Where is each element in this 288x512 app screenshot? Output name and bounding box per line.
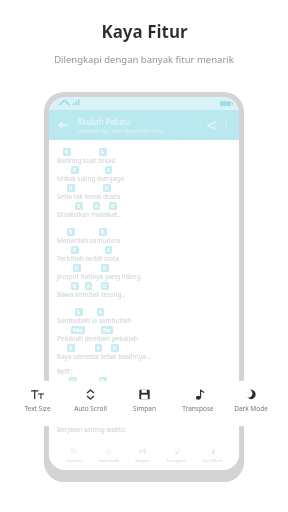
staticText: Terbitlah terbit cinta: [57, 254, 119, 263]
staticText: Dilengkapi dengan banyak fitur menarik: [54, 53, 234, 66]
staticText: Dark Mode: [234, 404, 268, 413]
staticText: Peluklah dendam peluklah: [57, 334, 139, 343]
button[interactable]: Auto Scroll: [65, 386, 115, 415]
staticText: F#m: [73, 327, 83, 333]
staticText: Reff :: [57, 367, 73, 376]
button[interactable]: Simpan: [119, 386, 169, 415]
staticText: Transpose: [166, 458, 186, 463]
staticText: Sambutlah ia sambutlah: [57, 316, 132, 325]
button[interactable]: Share: [203, 117, 219, 133]
staticText: D: [105, 185, 109, 191]
staticText: G: [101, 149, 105, 155]
staticText: G: [69, 345, 73, 351]
staticText: D: [101, 378, 105, 384]
staticText: D: [73, 247, 77, 253]
staticText: D: [101, 229, 105, 235]
staticText: D: [103, 283, 107, 289]
staticText: Auto Scroll: [74, 404, 107, 413]
staticText: Dark Mode: [202, 458, 223, 463]
staticText: Jemput hatinya yang hilang: [57, 272, 141, 281]
staticText: D: [65, 149, 69, 155]
staticText: D: [111, 203, 115, 209]
staticText: D: [77, 203, 81, 209]
staticText: A: [95, 203, 98, 209]
staticText: D: [69, 229, 73, 235]
button[interactable]: Dark Mode: [202, 446, 223, 465]
staticText: Simpan: [133, 404, 156, 413]
button[interactable]: Text Size: [12, 386, 62, 415]
staticText: A: [99, 309, 102, 315]
staticText: Beriring kuat tekad: [57, 156, 116, 165]
staticText: Berjalan seiring waktu: [57, 425, 126, 434]
staticText: D: [69, 185, 73, 191]
staticText: A: [97, 345, 100, 351]
staticText: A: [107, 167, 110, 173]
staticText: Simpan: [135, 458, 150, 463]
staticText: Auto Scroll: [98, 458, 119, 463]
staticText: G: [77, 309, 81, 315]
staticText: Kebaikan Ryo Feat. Maward JKT (HD): [77, 128, 164, 135]
staticText: D: [73, 167, 77, 173]
staticText: Disaksikan malaikat..: [57, 210, 121, 219]
staticText: Menarilah samudera: [57, 236, 121, 245]
staticText: D: [73, 283, 77, 289]
staticText: D: [75, 265, 79, 271]
button[interactable]: Text Size: [65, 446, 82, 465]
staticText: Text Size: [65, 458, 82, 463]
button[interactable]: Dark Mode: [226, 386, 276, 415]
staticText: Untuk saling menjaga: [57, 174, 124, 183]
staticText: Setia tak kenal dusta: [57, 192, 121, 201]
staticText: Masihkah rona has memori: [59, 385, 143, 394]
button[interactable]: Simpan: [135, 446, 150, 465]
staticText: A: [87, 283, 90, 289]
staticText: Bawa kembali terang..: [57, 290, 125, 299]
button[interactable]: More options: [219, 118, 233, 132]
staticText: Transpose: [182, 404, 214, 413]
button[interactable]: Transpose: [166, 446, 186, 465]
staticText: Bm: [103, 327, 111, 333]
button[interactable]: Back: [55, 117, 71, 133]
staticText: Kaya Fitur: [101, 20, 188, 43]
staticText: A: [107, 247, 110, 253]
staticText: Raya semesta tebar kasihnya ..: [57, 352, 151, 361]
staticText: Akulah Peluru: [77, 116, 131, 127]
staticText: D: [103, 265, 107, 271]
staticText: D: [71, 378, 75, 384]
staticText: D: [113, 345, 117, 351]
button[interactable]: Transpose: [173, 386, 223, 415]
button[interactable]: Auto Scroll: [98, 446, 119, 465]
staticText: Text Size: [24, 404, 51, 413]
